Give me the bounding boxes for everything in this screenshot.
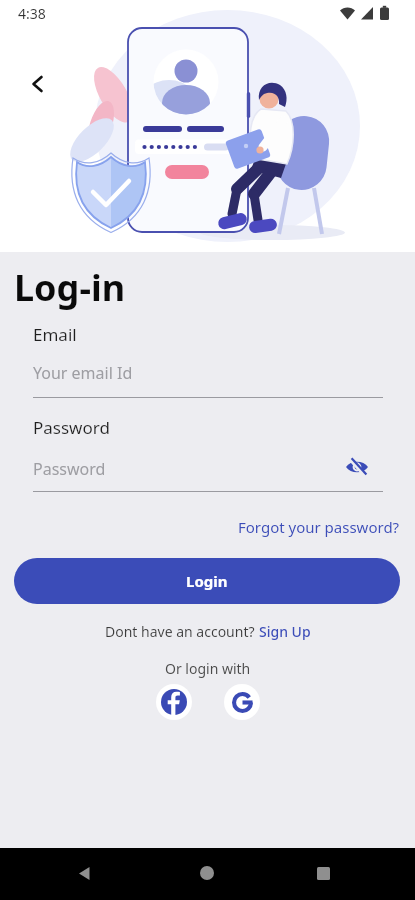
button[interactable] [156,684,192,720]
button[interactable] [62,851,106,895]
button[interactable]: Login [14,558,400,604]
staticText: Email [33,323,77,346]
button[interactable] [301,851,345,895]
staticText: Login [186,571,228,591]
staticText: Your email Id [33,362,133,384]
staticText: Password [33,416,110,439]
button[interactable] [16,62,60,106]
staticText: Or login with [165,659,251,678]
button[interactable]: Forgot your password? [238,517,400,537]
staticText: 4:38 [18,4,46,23]
staticText: Log-in [14,263,126,312]
button[interactable] [224,684,260,720]
button[interactable] [342,454,372,480]
staticText: Password [33,458,106,480]
button[interactable] [185,851,229,895]
staticText: Dont have an account? [105,622,259,641]
button[interactable]: Sign Up [259,622,311,641]
